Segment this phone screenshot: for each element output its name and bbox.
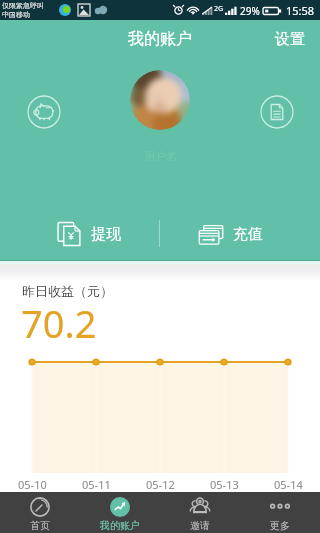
button[interactable]: 充值: [160, 213, 320, 253]
staticText: 2G: [214, 4, 224, 14]
staticText: 05-10: [18, 477, 47, 492]
staticText: 我的账户: [128, 29, 192, 49]
staticText: 我的账户: [100, 519, 140, 532]
button[interactable]: 账单: [260, 95, 294, 129]
staticText: 邀请: [190, 519, 210, 532]
staticText: 仅限紧急呼叫: [2, 1, 44, 10]
staticText: 05-12: [146, 477, 175, 492]
staticText: 05-14: [274, 477, 303, 492]
staticText: 中国移动: [2, 10, 30, 19]
button[interactable]: 更多: [240, 492, 320, 533]
button[interactable]: 设置: [261, 23, 320, 58]
staticText: 15:58: [286, 3, 315, 18]
staticText: 05-13: [210, 477, 239, 492]
button[interactable]: 我的账户: [80, 492, 160, 533]
staticText: 设置: [275, 30, 305, 49]
button[interactable]: 提现: [0, 213, 159, 253]
staticText: 05-11: [82, 477, 111, 492]
button[interactable]: 存钱: [27, 95, 61, 129]
button[interactable]: 邀请: [160, 492, 240, 533]
staticText: 提现: [91, 225, 121, 244]
staticText: 更多: [270, 519, 290, 532]
staticText: 首页: [30, 519, 50, 532]
button[interactable]: 首页: [0, 492, 80, 533]
button[interactable]: 头像: [130, 70, 190, 130]
staticText: 充值: [233, 225, 263, 244]
staticText: 用户名: [144, 149, 177, 163]
staticText: 29%: [240, 4, 260, 18]
staticText: 70.2: [21, 297, 97, 349]
staticText: 昨日收益（元）: [22, 283, 113, 299]
